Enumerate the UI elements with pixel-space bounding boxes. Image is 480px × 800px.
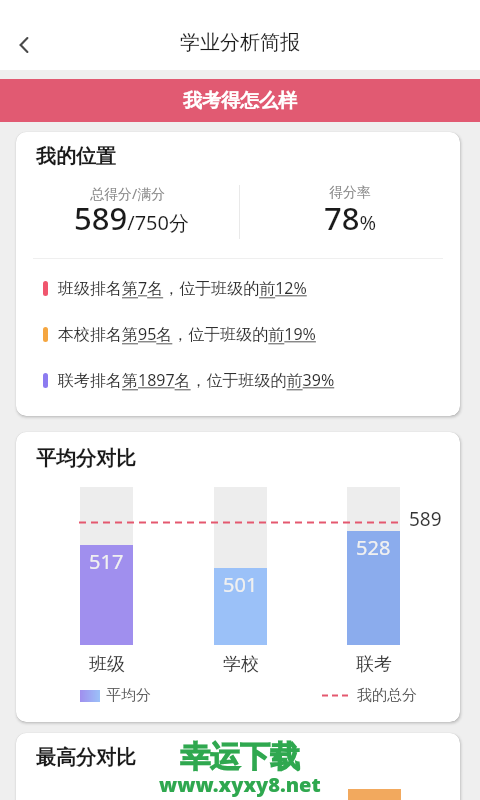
staticText: 幸运下载 — [180, 738, 300, 776]
staticText: 班级排名第7名，位于班级的前12% — [58, 277, 307, 299]
staticText: www.xyxy8.net — [159, 771, 321, 798]
staticText: 589/750分 — [74, 197, 189, 239]
button[interactable] — [16, 432, 460, 722]
button[interactable]: 联考排名第1897名，位于班级的前39% — [43, 369, 443, 391]
staticText: 班级 — [89, 653, 125, 676]
button[interactable]: 本校排名第95名，位于班级的前19% — [43, 323, 443, 345]
staticText: 589 — [409, 506, 442, 532]
staticText: 我的总分 — [357, 686, 417, 705]
button[interactable] — [16, 733, 460, 800]
staticText: 最高分对比 — [36, 745, 136, 770]
staticText: 联考 — [356, 653, 392, 676]
staticText: 平均分 — [106, 686, 151, 705]
staticText: 我考得怎么样 — [183, 89, 297, 113]
staticText: 我的位置 — [36, 144, 116, 169]
staticText: 总得分/满分 — [90, 184, 166, 203]
staticText: 联考排名第1897名，位于班级的前39% — [58, 369, 335, 391]
button[interactable]: 我考得怎么样 — [0, 79, 480, 122]
staticText: 517 — [89, 548, 124, 575]
button[interactable] — [16, 132, 460, 416]
button[interactable]: 班级排名第7名，位于班级的前12% — [43, 277, 443, 299]
staticText: 501 — [223, 571, 258, 598]
staticText: 得分率 — [329, 184, 371, 202]
staticText: 学校 — [223, 653, 259, 676]
staticText: 平均分对比 — [36, 446, 136, 471]
staticText: 本校排名第95名，位于班级的前19% — [58, 323, 316, 345]
button[interactable]: Back — [5, 25, 45, 65]
staticText: 学业分析简报 — [180, 30, 300, 55]
staticText: 528 — [356, 534, 391, 561]
staticText: 78% — [324, 197, 377, 239]
